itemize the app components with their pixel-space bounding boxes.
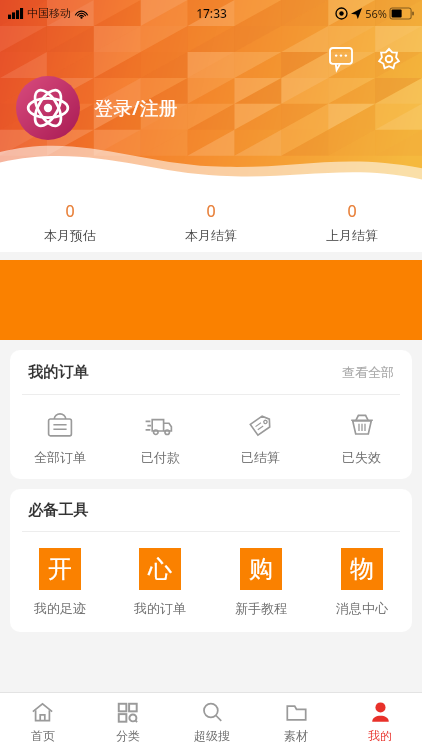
staticText: 全部订单	[34, 449, 86, 465]
staticText: 已失效	[342, 449, 381, 465]
staticText: 物	[350, 554, 374, 584]
staticText: 素材	[284, 728, 308, 743]
staticText: 超级搜	[194, 728, 230, 743]
staticText: 0	[65, 200, 75, 222]
staticText: 开	[48, 554, 72, 584]
button[interactable]: 分类	[85, 693, 170, 750]
button[interactable]: 我的	[338, 693, 422, 750]
staticText: 17:33	[196, 5, 227, 21]
button[interactable]: 心	[110, 532, 210, 632]
staticText: 我的足迹	[34, 600, 86, 616]
staticText: 中国移动	[27, 6, 71, 20]
button[interactable]: 首页	[0, 693, 85, 750]
staticText: 首页	[31, 728, 55, 743]
button[interactable]: 已付款	[110, 395, 210, 479]
staticText: 我的订单	[134, 600, 186, 616]
staticText: 登录/注册	[94, 95, 178, 121]
staticText: 我的	[368, 728, 392, 743]
button[interactable]: Messages	[324, 42, 358, 76]
staticText: 0	[347, 200, 357, 222]
staticText: 上月结算	[326, 227, 378, 243]
staticText: 0	[206, 200, 216, 222]
button[interactable]: Settings	[372, 42, 406, 76]
staticText: 分类	[116, 728, 140, 743]
staticText: 我的订单	[28, 363, 88, 382]
button[interactable]: 登录/注册	[16, 76, 178, 140]
staticText: 必备工具	[28, 501, 88, 520]
staticText: 56%	[365, 6, 387, 21]
button[interactable]: 素材	[254, 693, 338, 750]
button[interactable]: 0	[0, 190, 140, 252]
button[interactable]: 已结算	[210, 395, 311, 479]
staticText: 已结算	[241, 449, 280, 465]
staticText: 查看全部	[342, 364, 394, 380]
button[interactable]: 0	[140, 190, 281, 252]
button[interactable]: 全部订单	[10, 395, 110, 479]
staticText: 购	[249, 554, 273, 584]
button[interactable]: 0	[281, 190, 422, 252]
staticText: 本月结算	[185, 227, 237, 243]
button[interactable]: 查看全部	[342, 364, 394, 380]
staticText: 本月预估	[44, 227, 96, 243]
staticText: 消息中心	[336, 600, 388, 616]
button[interactable]: 物	[311, 532, 412, 632]
staticText: 新手教程	[235, 600, 287, 616]
staticText: 心	[148, 554, 172, 584]
button[interactable]: 开	[10, 532, 110, 632]
button[interactable]: 购	[210, 532, 311, 632]
button[interactable]: 已失效	[311, 395, 412, 479]
button[interactable]: 超级搜	[170, 693, 254, 750]
staticText: 已付款	[141, 449, 180, 465]
